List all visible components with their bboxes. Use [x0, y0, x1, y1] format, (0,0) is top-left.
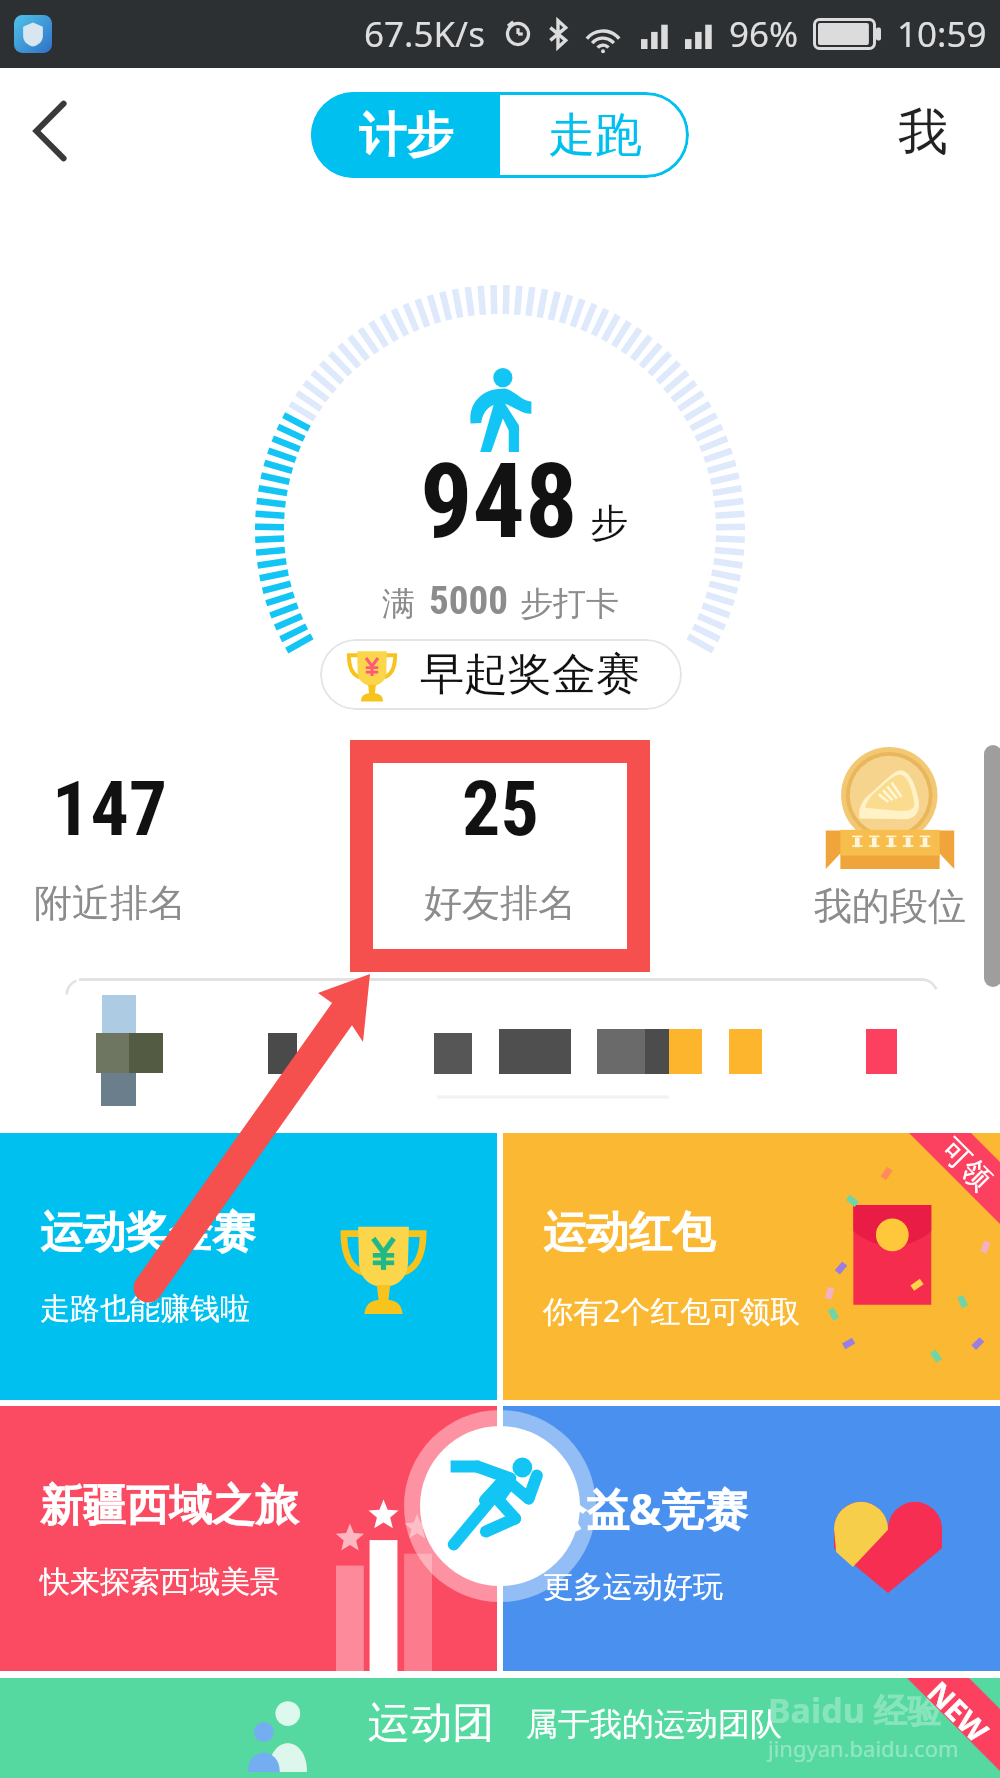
button[interactable]	[65, 978, 939, 1118]
staticText: 10:59	[897, 10, 987, 58]
staticText: 147	[52, 764, 168, 853]
staticText: 更多运动好玩	[543, 1568, 723, 1606]
staticText: 5000	[429, 578, 508, 624]
staticText: 满	[382, 583, 415, 625]
staticText: 步打卡	[520, 583, 619, 625]
staticText: 附近排名	[34, 879, 186, 927]
button[interactable]: 25	[300, 740, 700, 940]
staticText: 走跑	[548, 106, 642, 165]
button[interactable]: 运动奖金赛	[0, 1133, 497, 1400]
staticText: 我	[898, 101, 948, 164]
staticText: 我的段位	[814, 882, 966, 930]
staticText: 67.5K/s	[364, 10, 485, 58]
staticText: 你有2个红包可领取	[543, 1290, 801, 1331]
staticText: NEW	[919, 1672, 998, 1751]
button[interactable]: 公益&竞赛	[503, 1406, 1000, 1671]
button[interactable]: 新疆西域之旅	[0, 1406, 497, 1671]
staticText: 948	[420, 441, 578, 561]
staticText: 96%	[729, 10, 799, 58]
staticText: 运动红包	[543, 1206, 715, 1260]
button[interactable]: Start running	[420, 1426, 580, 1586]
staticText: 25	[462, 764, 539, 853]
button[interactable]: 计步	[311, 92, 500, 178]
staticText: 新疆西域之旅	[40, 1479, 298, 1533]
staticText: 可领	[932, 1131, 1000, 1198]
button[interactable]: 早起奖金赛	[320, 639, 682, 710]
button[interactable]: 运动团	[0, 1678, 1000, 1778]
button[interactable]: 运动红包	[503, 1133, 1000, 1400]
staticText: 运动团	[368, 1697, 494, 1750]
button[interactable]: 我	[868, 86, 978, 178]
button[interactable]: Back	[0, 84, 100, 178]
button[interactable]: 我的段位	[690, 740, 1000, 940]
staticText: 早起奖金赛	[420, 647, 640, 702]
staticText: 好友排名	[424, 879, 576, 927]
staticText: 运动奖金赛	[40, 1206, 255, 1260]
staticText: 属于我的运动团队	[526, 1704, 782, 1744]
staticText: jingyan.baidu.com	[768, 1733, 959, 1763]
staticText: 计步	[359, 106, 453, 165]
staticText: 公益&竞赛	[543, 1479, 748, 1538]
staticText: Baidu 经验	[768, 1687, 942, 1733]
staticText: 快来探索西域美景	[40, 1563, 280, 1601]
button[interactable]: 走跑	[500, 92, 689, 178]
staticText: 步	[590, 499, 628, 547]
button[interactable]: 147	[0, 740, 310, 940]
staticText: 走路也能赚钱啦	[40, 1290, 250, 1328]
